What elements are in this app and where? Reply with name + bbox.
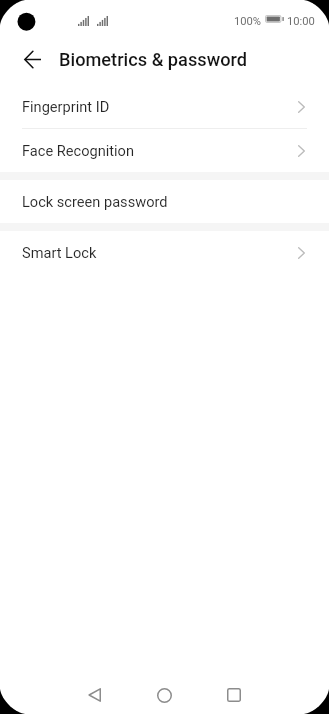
staticText: Lock screen password [22, 193, 168, 210]
staticText: Biometrics & password [59, 49, 248, 70]
button[interactable]: Back [74, 675, 114, 714]
staticText: Face Recognition [22, 142, 134, 159]
button[interactable]: Back [12, 39, 52, 79]
button[interactable]: Recent apps [214, 675, 254, 714]
staticText: Fingerprint ID [22, 98, 110, 115]
button[interactable]: Smart Lock [0, 231, 329, 274]
button[interactable]: Lock screen password [0, 180, 329, 223]
staticText: 100% [234, 15, 262, 28]
button[interactable]: Home [144, 675, 184, 714]
button[interactable]: Face Recognition [0, 129, 329, 172]
staticText: Smart Lock [22, 244, 97, 261]
button[interactable]: Fingerprint ID [0, 85, 329, 128]
staticText: 10:00 [287, 15, 315, 28]
